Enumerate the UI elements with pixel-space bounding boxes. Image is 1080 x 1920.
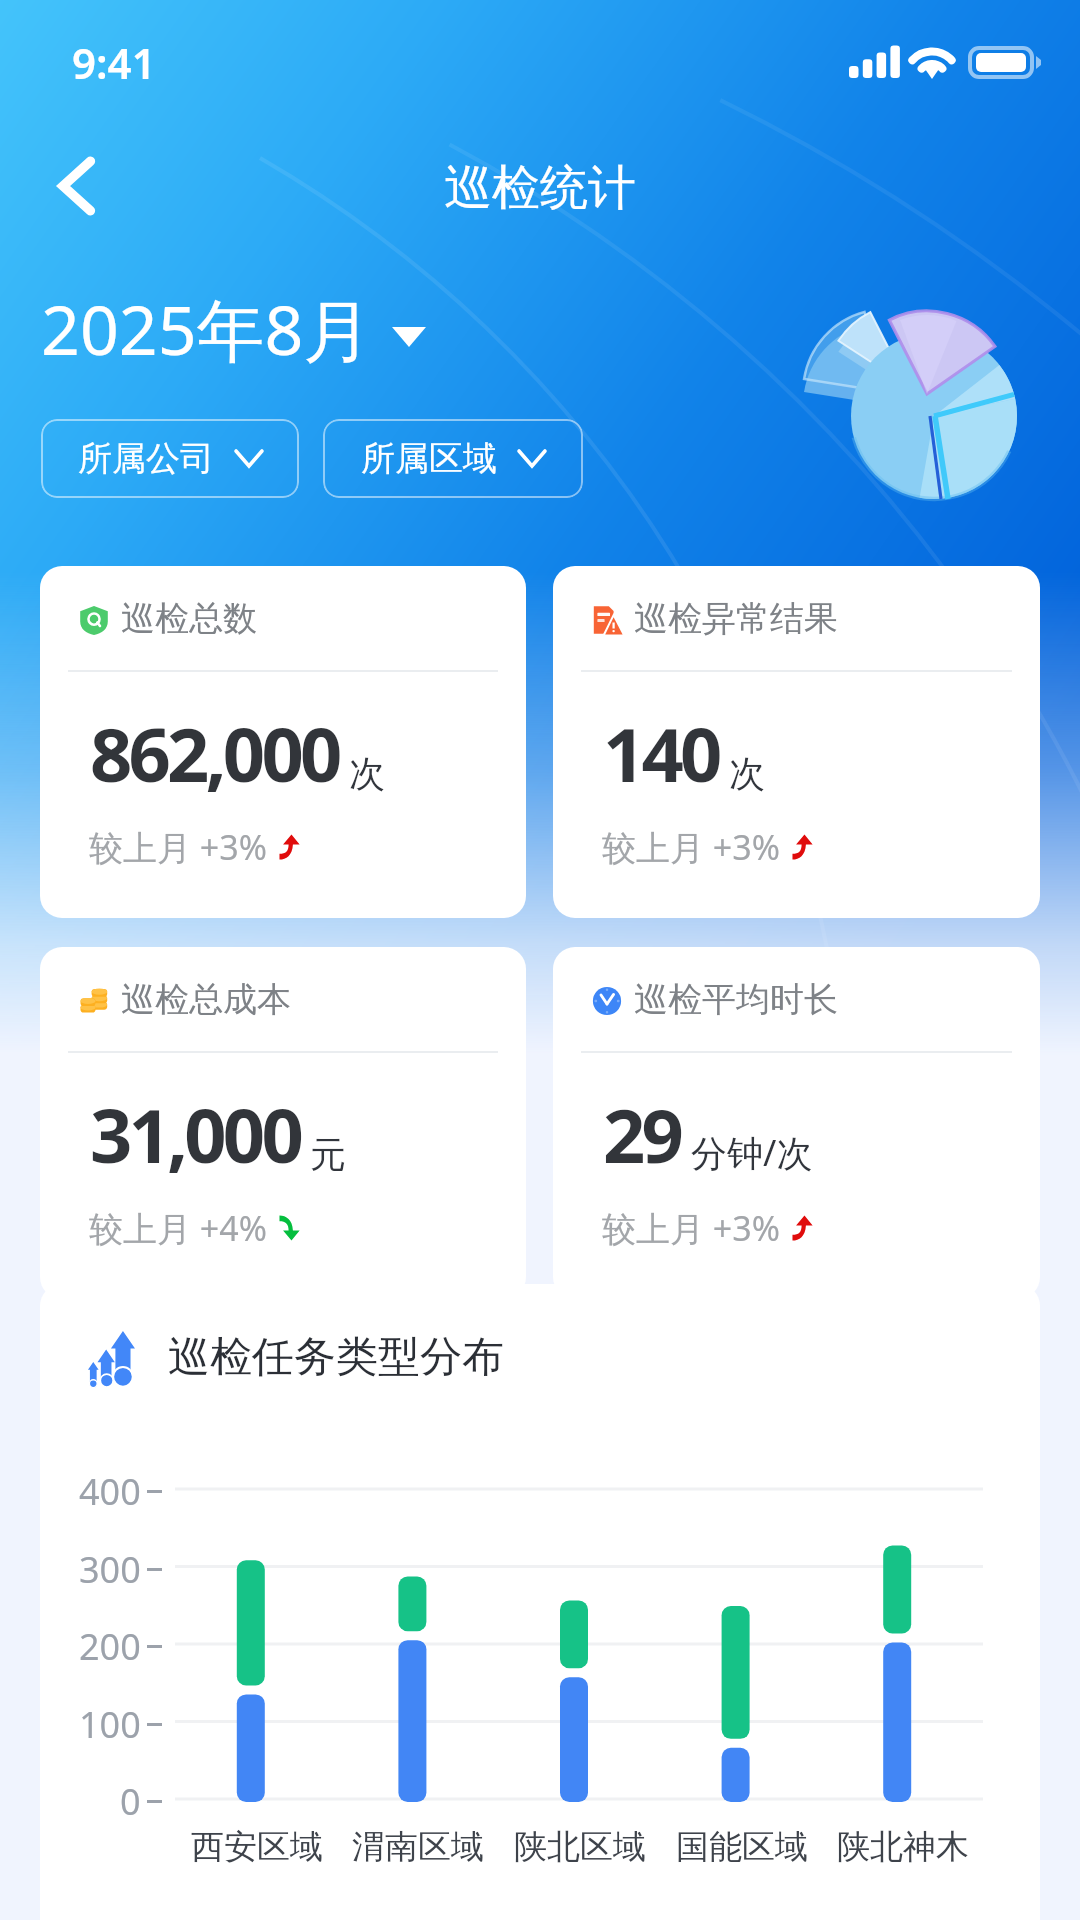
staticText: 2025年8月 bbox=[41, 282, 372, 375]
staticText: 29 bbox=[603, 1084, 681, 1185]
staticText: 次 bbox=[349, 751, 385, 796]
staticText: 巡检平均时长 bbox=[634, 978, 838, 1021]
staticText: 分钟/次 bbox=[691, 1128, 813, 1177]
staticText: 次 bbox=[729, 751, 765, 796]
staticText: 巡检总数 bbox=[121, 597, 257, 640]
staticText: 巡检统计 bbox=[444, 158, 636, 218]
staticText: 巡检异常结果 bbox=[634, 597, 838, 640]
button[interactable]: 所属区域 bbox=[323, 419, 583, 498]
button[interactable]: 巡检总成本 bbox=[40, 947, 526, 1299]
staticText: 较上月 +4% bbox=[89, 1205, 267, 1251]
staticText: 0 bbox=[120, 1777, 141, 1826]
button[interactable]: 巡检平均时长 bbox=[553, 947, 1040, 1299]
staticText: 陕北神木 bbox=[837, 1826, 969, 1868]
staticText: 国能区域 bbox=[676, 1826, 808, 1868]
button[interactable]: 巡检总数 bbox=[40, 566, 526, 918]
staticText: 较上月 +3% bbox=[89, 824, 267, 870]
staticText: 9:41 bbox=[72, 34, 156, 91]
staticText: 100 bbox=[79, 1700, 141, 1749]
button[interactable]: Back bbox=[30, 148, 122, 224]
staticText: 巡检任务类型分布 bbox=[168, 1331, 504, 1384]
button[interactable]: 2025年8月 bbox=[41, 282, 426, 375]
staticText: 400 bbox=[79, 1467, 141, 1516]
staticText: 较上月 +3% bbox=[602, 824, 780, 870]
staticText: 巡检总成本 bbox=[121, 978, 291, 1021]
staticText: 140 bbox=[603, 703, 719, 804]
staticText: 所属区域 bbox=[361, 437, 497, 480]
staticText: 西安区域 bbox=[191, 1826, 323, 1868]
staticText: 元 bbox=[310, 1132, 346, 1177]
staticText: 所属公司 bbox=[78, 437, 214, 480]
staticText: 31,000 bbox=[90, 1084, 300, 1185]
staticText: 渭南区域 bbox=[352, 1826, 484, 1868]
staticText: 862,000 bbox=[90, 703, 339, 804]
staticText: 300 bbox=[79, 1545, 141, 1594]
staticText: 陕北区域 bbox=[514, 1826, 646, 1868]
button[interactable]: 巡检异常结果 bbox=[553, 566, 1040, 918]
staticText: 较上月 +3% bbox=[602, 1205, 780, 1251]
staticText: 200 bbox=[79, 1622, 141, 1671]
button[interactable]: 所属公司 bbox=[41, 419, 299, 498]
